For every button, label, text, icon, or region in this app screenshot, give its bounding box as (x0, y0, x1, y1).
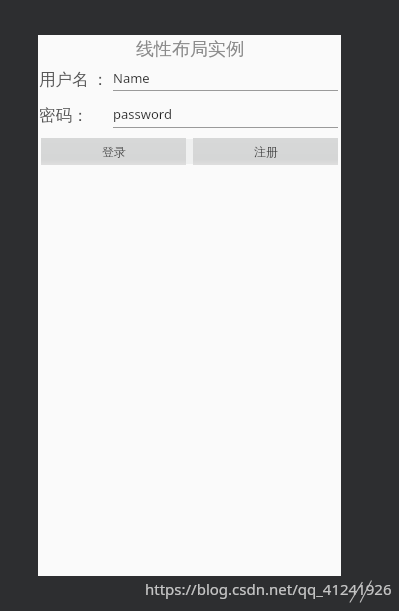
staticText: 线性布局实例 (136, 38, 244, 61)
staticText: 密码： (39, 105, 89, 126)
staticText: https://blog.csdn.net/qq_41241926 (145, 579, 392, 599)
staticText: 用户名 (39, 69, 89, 90)
staticText: 注册 (254, 144, 278, 159)
button[interactable]: 登录 (41, 138, 186, 165)
staticText: 登录 (102, 144, 126, 159)
staticText: password (113, 105, 172, 123)
staticText: ： (92, 69, 109, 90)
staticText: Name (113, 69, 150, 87)
button[interactable]: 注册 (193, 138, 338, 165)
button[interactable]: password (113, 101, 338, 128)
button[interactable]: Name (113, 65, 338, 91)
